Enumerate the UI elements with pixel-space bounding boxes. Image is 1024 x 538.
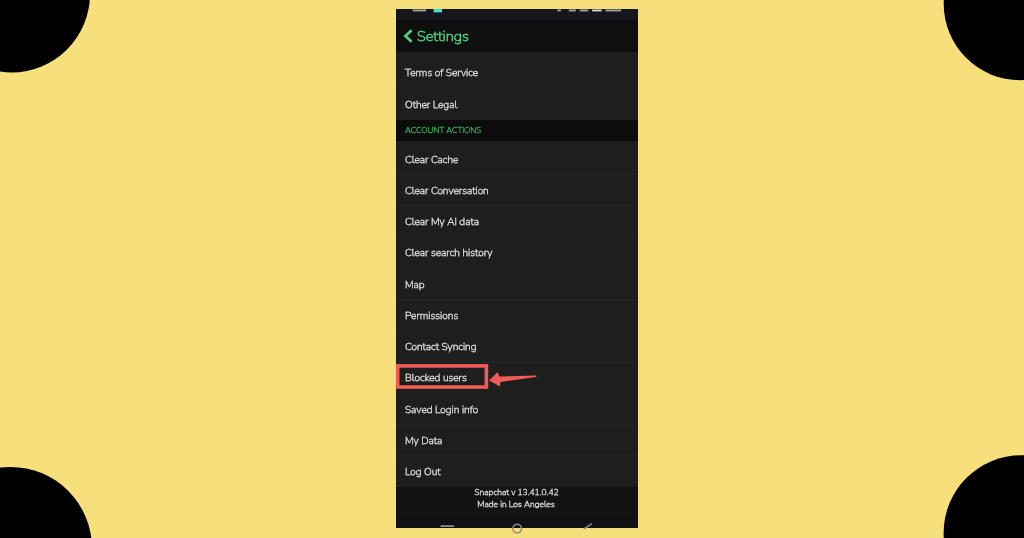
staticText: Saved Login info [405, 403, 479, 417]
staticText: Settings [417, 26, 469, 46]
button[interactable]: Log Out [396, 456, 638, 487]
staticText: Clear search history [405, 246, 493, 260]
button[interactable]: Clear Conversation [396, 175, 638, 206]
staticText: Blocked users [405, 371, 467, 385]
button[interactable]: Other Legal [396, 89, 638, 120]
button[interactable]: Clear search history [396, 237, 638, 268]
staticText: Clear Conversation [405, 184, 489, 198]
button[interactable]: My Data [396, 425, 638, 456]
staticText: Clear My AI data [405, 215, 479, 229]
staticText: Terms of Service [405, 66, 479, 80]
button[interactable]: Clear Cache [396, 144, 638, 175]
staticText: Other Legal [405, 98, 458, 112]
button[interactable]: Contact Syncing [396, 331, 638, 362]
staticText: Contact Syncing [405, 340, 477, 354]
staticText: Map [405, 278, 425, 292]
staticText: Snapchat v 13.41.0.42 [474, 486, 559, 498]
staticText: Made in Los Angeles [477, 498, 555, 510]
staticText: Permissions [405, 309, 459, 323]
button[interactable]: Back [402, 26, 417, 46]
button[interactable]: Blocked users [396, 362, 638, 393]
button[interactable]: Saved Login info [396, 394, 638, 425]
staticText: Clear Cache [405, 153, 459, 167]
staticText: Log Out [405, 465, 441, 479]
button[interactable]: Map [396, 269, 638, 300]
button[interactable]: Permissions [396, 300, 638, 331]
staticText: My Data [405, 434, 443, 448]
button[interactable]: Terms of Service [396, 57, 638, 88]
button[interactable]: Clear My AI data [396, 206, 638, 237]
staticText: ACCOUNT ACTIONS [405, 125, 482, 136]
